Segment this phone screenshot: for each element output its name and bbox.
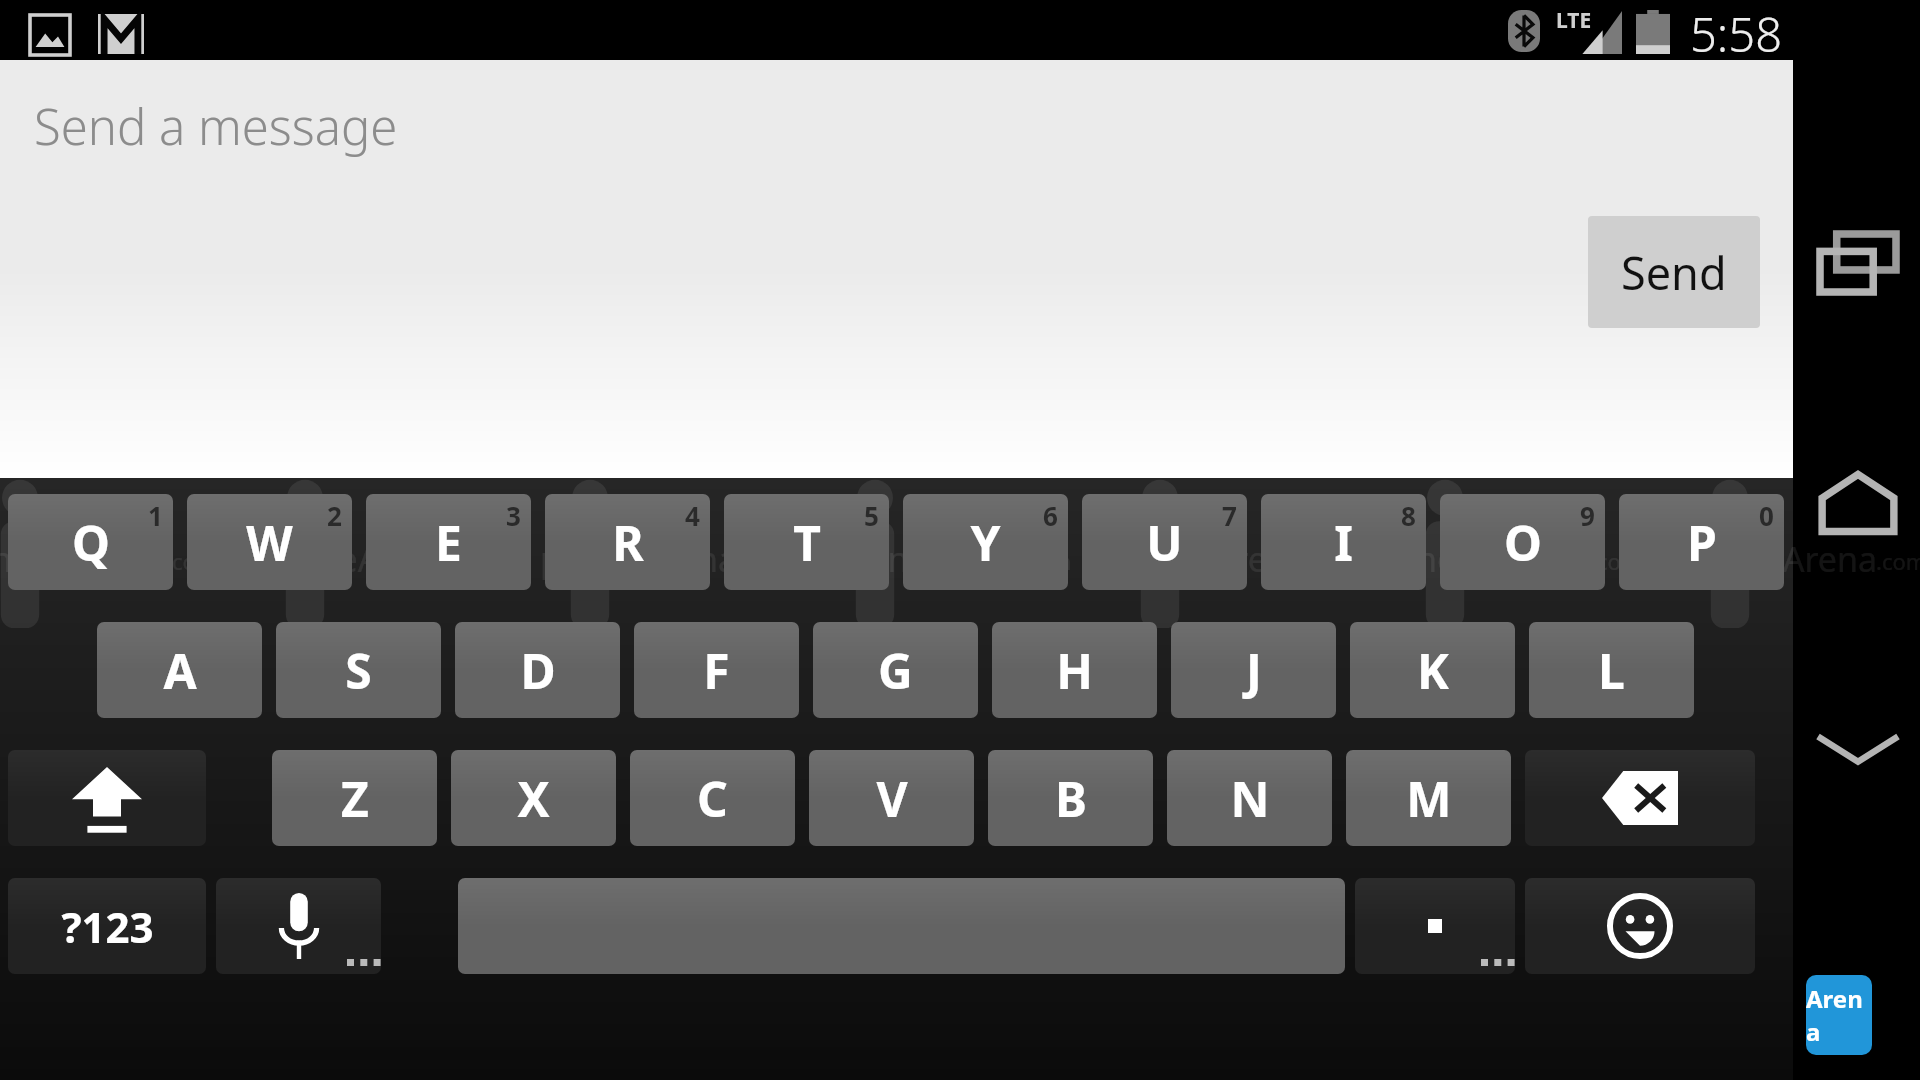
staticText: K <box>1417 638 1449 703</box>
staticText: 3 <box>506 498 521 533</box>
staticText: Q <box>72 510 110 575</box>
staticText: 5 <box>864 498 879 533</box>
staticText: phoneArena <box>0 536 168 582</box>
staticText: C <box>697 766 728 831</box>
button[interactable]: Home <box>1795 440 1920 565</box>
button[interactable]: O <box>1440 494 1605 590</box>
staticText: phoneArena <box>540 536 738 582</box>
button[interactable]: Period <box>1355 878 1515 974</box>
staticText: W <box>246 510 293 575</box>
button[interactable]: Recent apps <box>1795 200 1920 325</box>
staticText: .com <box>1591 546 1642 576</box>
staticText: phoneArena <box>1680 536 1878 582</box>
staticText: phoneArena <box>1110 536 1308 582</box>
staticText: 6 <box>1043 498 1058 533</box>
button[interactable]: Shift <box>8 750 206 846</box>
button[interactable]: V <box>809 750 974 846</box>
button[interactable]: I <box>1261 494 1426 590</box>
staticText: R <box>612 510 644 575</box>
staticText: H <box>1056 638 1093 703</box>
button[interactable]: Emoji <box>1525 878 1755 974</box>
button[interactable]: J <box>1171 622 1336 718</box>
staticText: P <box>1687 510 1717 575</box>
button[interactable]: T <box>724 494 889 590</box>
staticText: L <box>1598 638 1625 703</box>
button[interactable]: K <box>1350 622 1515 718</box>
staticText: Send <box>1621 242 1727 303</box>
button[interactable]: Backspace <box>1525 750 1755 846</box>
staticText: 0 <box>1759 498 1774 533</box>
button[interactable]: L <box>1529 622 1694 718</box>
staticText: 9 <box>1580 498 1595 533</box>
staticText: U <box>1146 510 1183 575</box>
staticText: ?123 <box>61 898 154 955</box>
staticText: A <box>163 638 197 703</box>
staticText: 2 <box>327 498 342 533</box>
staticText: E <box>435 510 462 575</box>
button[interactable]: M <box>1346 750 1511 846</box>
button[interactable]: Send <box>1588 216 1760 328</box>
staticText: LTE <box>1556 6 1592 35</box>
staticText: Send a message <box>34 93 398 160</box>
staticText: X <box>517 766 550 831</box>
button[interactable]: Back <box>1795 685 1920 810</box>
staticText: phoneArena <box>1395 536 1593 582</box>
button[interactable]: X <box>451 750 616 846</box>
staticText: 4 <box>685 498 700 533</box>
staticText: .com <box>166 546 217 576</box>
staticText: 8 <box>1401 498 1416 533</box>
staticText: O <box>1504 510 1542 575</box>
staticText: .com <box>1021 546 1072 576</box>
staticText: .com <box>451 546 502 576</box>
staticText: V <box>876 766 908 831</box>
staticText: Z <box>341 766 369 831</box>
button[interactable]: S <box>276 622 441 718</box>
staticText: 5:58 <box>1690 2 1782 62</box>
button[interactable]: Z <box>272 750 437 846</box>
staticText: B <box>1055 766 1087 831</box>
staticText: J <box>1246 638 1262 703</box>
staticText: 7 <box>1222 498 1237 533</box>
button[interactable]: F <box>634 622 799 718</box>
staticText: D <box>520 638 556 703</box>
staticText: phoneArena <box>255 536 453 582</box>
staticText: G <box>878 638 913 703</box>
staticText: .com <box>1306 546 1357 576</box>
staticText: F <box>703 638 730 703</box>
staticText: phoneArena <box>825 536 1023 582</box>
button[interactable]: P <box>1619 494 1784 590</box>
staticText: N <box>1230 766 1270 831</box>
staticText: T <box>793 510 821 575</box>
button[interactable]: N <box>1167 750 1332 846</box>
button[interactable]: H <box>992 622 1157 718</box>
button[interactable]: Y <box>903 494 1068 590</box>
staticText: Y <box>970 510 1001 575</box>
button[interactable]: Q <box>8 494 173 590</box>
button[interactable]: G <box>813 622 978 718</box>
button[interactable]: C <box>630 750 795 846</box>
button[interactable]: ?123 <box>8 878 206 974</box>
button[interactable]: W <box>187 494 352 590</box>
button[interactable]: B <box>988 750 1153 846</box>
button[interactable]: Voice input <box>216 878 381 974</box>
button[interactable]: U <box>1082 494 1247 590</box>
staticText: Arena <box>1806 982 1872 1048</box>
button[interactable]: A <box>97 622 262 718</box>
staticText: I <box>1334 510 1353 575</box>
staticText: M <box>1406 766 1452 831</box>
button[interactable]: E <box>366 494 531 590</box>
button[interactable]: D <box>455 622 620 718</box>
button[interactable] <box>458 878 1345 974</box>
staticText: S <box>345 638 372 703</box>
staticText: 1 <box>148 498 163 533</box>
staticText: .com <box>1876 546 1920 576</box>
button[interactable]: R <box>545 494 710 590</box>
